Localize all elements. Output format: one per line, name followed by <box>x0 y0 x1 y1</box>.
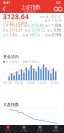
staticText: 3133.80 <box>31 24 44 27</box>
staticText: 3821亿 <box>29 33 40 37</box>
staticText: 3.8亿 <box>10 33 18 37</box>
staticText: 1.02% <box>52 24 61 27</box>
staticText: 我的 <box>53 129 59 132</box>
staticText: 最低 <box>25 29 31 32</box>
staticText: 3116.29 <box>10 29 23 32</box>
button[interactable]: Back <box>2 5 7 12</box>
staticText: 10:30 <box>15 81 24 85</box>
staticText: 3116.29 <box>10 24 23 27</box>
staticText: 15:00 <box>49 81 58 85</box>
staticText: 3110.12 <box>32 29 45 32</box>
staticText: 总手 <box>3 34 9 37</box>
staticText: 昨收 <box>3 29 9 32</box>
button[interactable]: 我的 <box>48 125 64 133</box>
button[interactable]: 行情 <box>16 125 32 133</box>
staticText: 3128.64 <box>3 12 29 21</box>
staticText: 0.98 <box>54 29 61 32</box>
staticText: 散户净流入 <box>25 60 40 63</box>
staticText: 上证指数 <box>20 4 40 11</box>
staticText: 行情 <box>21 129 27 132</box>
staticText: 大盘指数 <box>3 102 19 107</box>
staticText: 9:41 <box>3 0 10 5</box>
button[interactable]: Search <box>54 7 58 11</box>
staticText: 量比 <box>47 29 53 32</box>
staticText: 换手 1.02% <box>45 19 61 22</box>
staticText: 000001 <box>24 10 36 14</box>
staticText: 交易 <box>37 129 43 132</box>
staticText: 今开 <box>3 24 9 27</box>
staticText: 成交额 3821亿 <box>40 15 61 18</box>
staticText: 主力净流入 <box>6 60 21 63</box>
staticText: 资金流向 <box>3 54 19 59</box>
staticText: 自选 <box>5 129 11 132</box>
staticText: 换手 <box>45 24 51 27</box>
staticText: 14:00 <box>38 81 47 85</box>
staticText: 5G <box>56 0 61 5</box>
button[interactable]: 交易 <box>32 125 48 133</box>
staticText: 09:30 <box>3 81 12 85</box>
button[interactable]: 自选 <box>0 125 16 133</box>
staticText: 13:00 <box>26 81 35 85</box>
button[interactable]: More <box>58 7 62 11</box>
staticText: 振幅 <box>45 34 51 37</box>
staticText: 0.76% <box>52 33 61 37</box>
staticText: 金额 <box>23 34 29 37</box>
staticText: 最高 <box>24 24 30 27</box>
staticText: +12.35 +0.40% <box>3 22 27 25</box>
